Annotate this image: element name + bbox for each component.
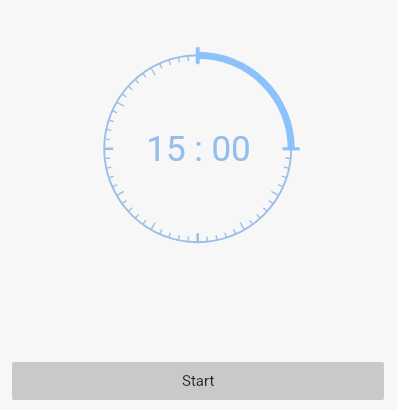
button[interactable]: Start (12, 362, 384, 400)
staticText: Start (182, 372, 215, 390)
staticText: 15 : 00 (0, 129, 397, 170)
button[interactable]: Timer dial, 15 minutes (0, 0, 397, 410)
